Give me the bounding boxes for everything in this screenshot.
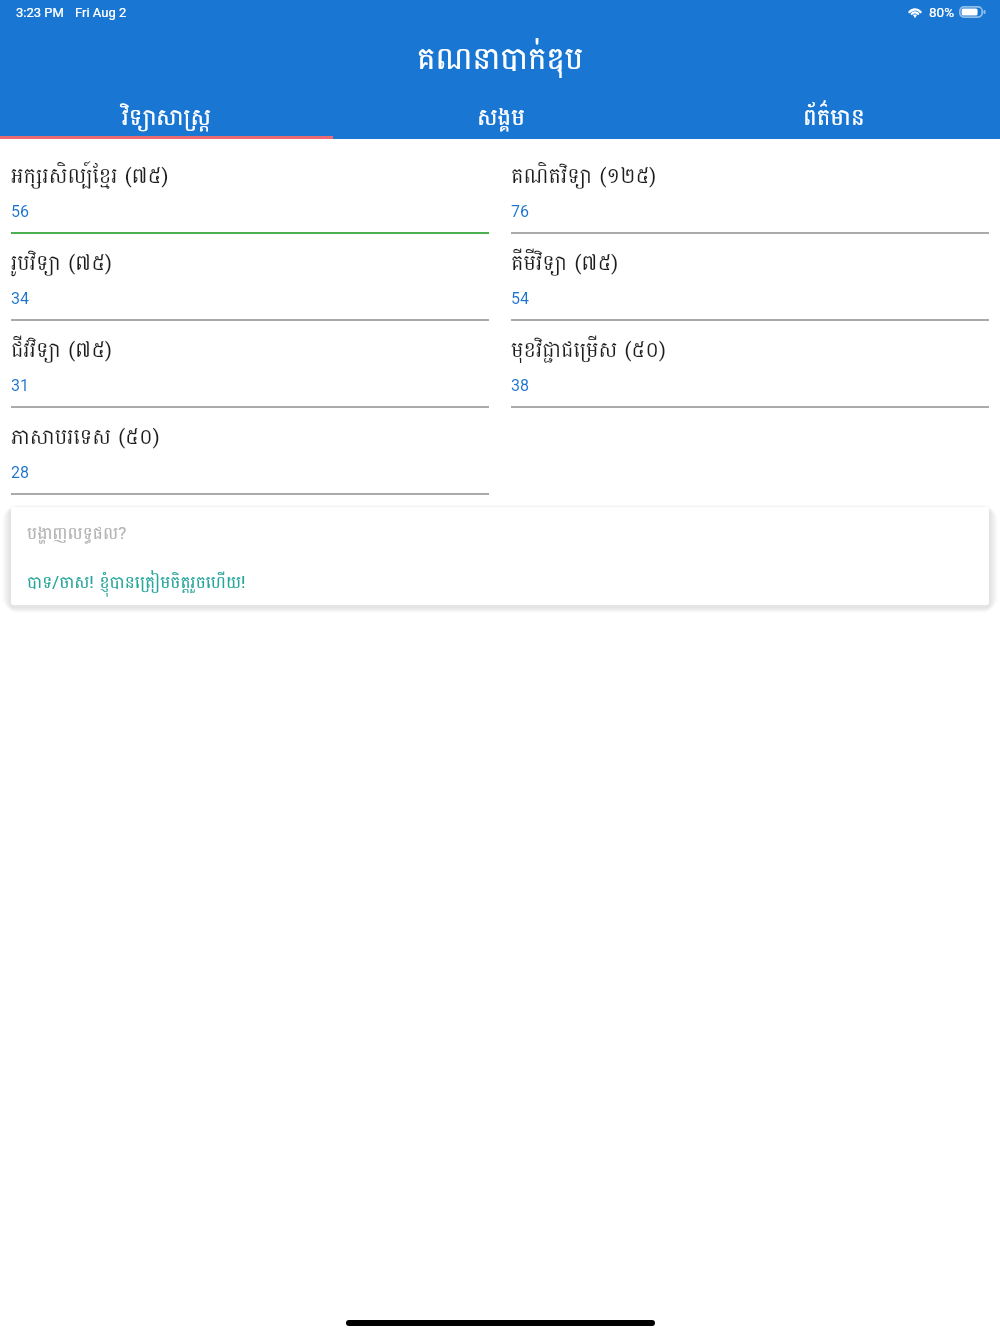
button[interactable]: ព័ត៌មាន <box>667 97 1000 139</box>
button[interactable]: រូបវិទ្យា (៧៥) <box>11 234 489 321</box>
other: Wi-Fi <box>908 6 922 19</box>
button[interactable]: សង្គម <box>334 97 667 139</box>
staticText: គណនាបាក់ឌុប <box>417 31 584 87</box>
button[interactable]: គីមីវិទ្យា (៧៥) <box>511 234 989 321</box>
staticText: វិទ្យាសាស្ត្រ <box>122 97 212 139</box>
button[interactable]: បង្ហាញលទ្ធផល? <box>11 507 989 605</box>
staticText: 56 <box>11 202 29 221</box>
button[interactable]: អក្សរសិល្ប៍ខ្មែរ (៧៥) <box>11 147 489 234</box>
staticText: 54 <box>511 289 529 308</box>
staticText: គីមីវិទ្យា (៧៥) <box>511 244 618 282</box>
staticText: 80% <box>929 4 955 20</box>
staticText: រូបវិទ្យា (៧៥) <box>11 244 112 282</box>
button[interactable]: គណិតវិទ្យា (១២៥) <box>511 147 989 234</box>
staticText: បង្ហាញលទ្ធផល? <box>27 518 127 549</box>
staticText: បាទ/ចាស! ខ្ញុំបានត្រៀមចិត្តរួចហើយ! <box>27 567 246 598</box>
staticText: 28 <box>11 463 29 482</box>
staticText: 31 <box>11 376 29 395</box>
staticText: សង្គម <box>477 97 525 139</box>
staticText: គណិតវិទ្យា (១២៥) <box>511 157 657 195</box>
staticText: មុខវិជ្ជាជម្រើស (៥០) <box>511 331 666 369</box>
staticText: ភាសាបរទេស (៥០) <box>11 418 160 456</box>
staticText: 38 <box>511 376 529 395</box>
staticText: 34 <box>11 289 29 308</box>
button[interactable]: ជីវវិទ្យា (៧៥) <box>11 321 489 408</box>
other: Battery 80 percent <box>959 6 986 18</box>
staticText: អក្សរសិល្ប៍ខ្មែរ (៧៥) <box>11 157 169 195</box>
button[interactable]: វិទ្យាសាស្ត្រ <box>0 97 334 139</box>
button[interactable]: ភាសាបរទេស (៥០) <box>11 408 489 495</box>
staticText: Fri Aug 2 <box>75 5 127 20</box>
staticText: 3:23 PM <box>16 5 64 20</box>
staticText: 76 <box>511 202 529 221</box>
staticText: ជីវវិទ្យា (៧៥) <box>11 331 112 369</box>
button[interactable]: មុខវិជ្ជាជម្រើស (៥០) <box>511 321 989 408</box>
staticText: ព័ត៌មាន <box>803 97 865 139</box>
